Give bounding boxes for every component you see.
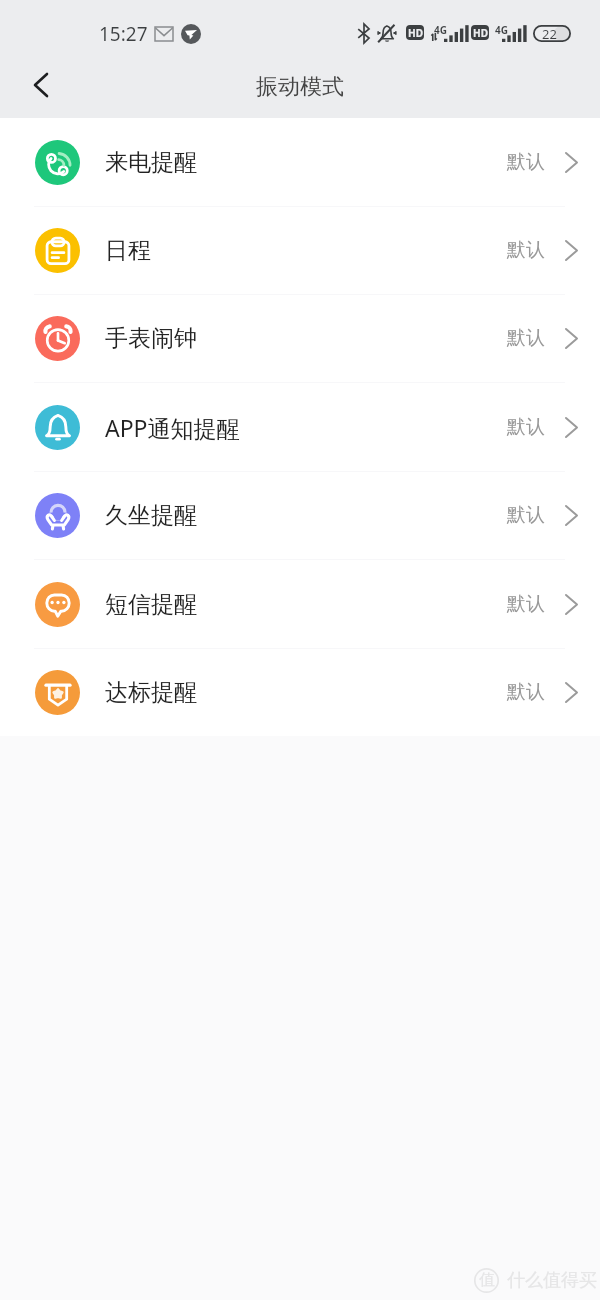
staticText: 默认: [507, 238, 545, 262]
staticText: HD: [408, 26, 423, 40]
staticText: 手表闹钟: [105, 324, 197, 353]
staticText: 久坐提醒: [105, 501, 197, 530]
staticText: 默认: [507, 150, 545, 174]
staticText: 达标提醒: [105, 678, 197, 707]
staticText: APP通知提醒: [105, 412, 240, 443]
button[interactable]: 日程: [0, 206, 600, 294]
button[interactable]: Back: [14, 58, 68, 112]
staticText: 默认: [507, 503, 545, 527]
button[interactable]: APP通知提醒: [0, 383, 600, 471]
staticText: 4G: [495, 23, 508, 37]
button[interactable]: 短信提醒: [0, 560, 600, 648]
staticText: 22: [542, 25, 557, 42]
button[interactable]: 手表闹钟: [0, 294, 600, 382]
staticText: 短信提醒: [105, 590, 197, 619]
button[interactable]: 达标提醒: [0, 648, 600, 736]
staticText: 15:27: [99, 21, 148, 47]
button[interactable]: 久坐提醒: [0, 471, 600, 559]
staticText: 来电提醒: [105, 148, 197, 177]
staticText: 默认: [507, 680, 545, 704]
staticText: 默认: [507, 415, 545, 439]
staticText: 值: [479, 1270, 495, 1290]
staticText: 什么值得买: [507, 1269, 597, 1292]
staticText: 日程: [105, 236, 151, 265]
staticText: HD: [473, 26, 488, 40]
staticText: 4G: [434, 23, 447, 37]
button[interactable]: 来电提醒: [0, 118, 600, 206]
staticText: 默认: [507, 592, 545, 616]
staticText: 振动模式: [256, 73, 344, 101]
staticText: 默认: [507, 326, 545, 350]
